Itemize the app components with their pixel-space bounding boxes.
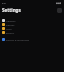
button[interactable]: Battery [0, 30, 64, 34]
staticText: Apps [6, 27, 12, 30]
button[interactable]: Display & brightness [0, 37, 64, 41]
staticText: 9:41 [2, 2, 7, 5]
button[interactable]: Apps [0, 26, 64, 30]
button[interactable]: Network [0, 18, 64, 22]
staticText: Display & brightness [6, 38, 30, 41]
button[interactable]: Account [57, 8, 62, 13]
staticText: Settings [2, 7, 21, 13]
staticText: ●●▮ [56, 2, 62, 5]
staticText: Devices [6, 23, 15, 26]
button[interactable]: Devices [0, 22, 64, 26]
staticText: Battery [6, 31, 15, 34]
staticText: Network [6, 19, 16, 22]
